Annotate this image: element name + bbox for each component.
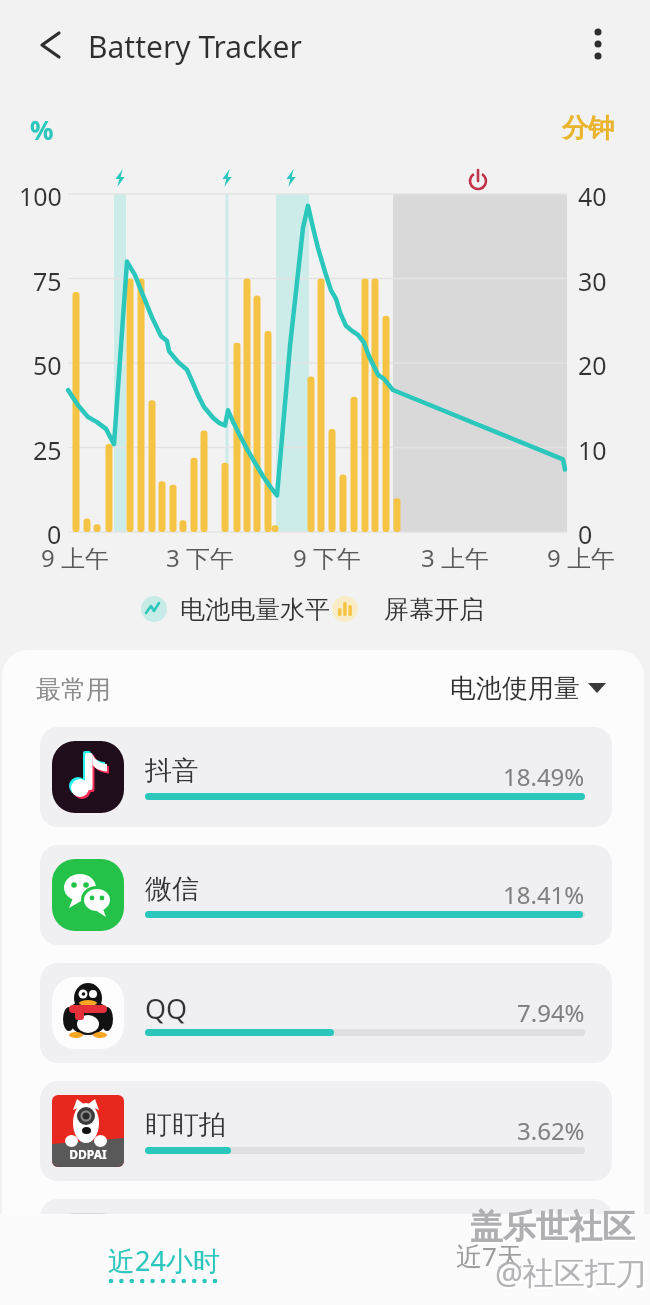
button[interactable] <box>40 1199 612 1299</box>
staticText: 7.94% <box>517 996 585 1029</box>
staticText: 电池电量水平 <box>180 594 330 625</box>
staticText: @社区扛刀 <box>497 1253 649 1295</box>
staticText: 30 <box>578 264 607 298</box>
button[interactable]: QQ <box>40 963 612 1063</box>
staticText: 近24小时 <box>108 1242 220 1279</box>
button[interactable]: 微信 <box>40 845 612 945</box>
staticText: 18.41% <box>503 878 585 911</box>
staticText: DDPAI <box>52 1146 124 1162</box>
staticText: 电池使用量 <box>450 672 580 705</box>
staticText: % <box>30 112 54 147</box>
staticText: Battery Tracker <box>88 26 302 67</box>
staticText: 微信 <box>145 872 199 906</box>
button[interactable]: 近7天 <box>440 1228 550 1278</box>
staticText: 25 <box>33 433 62 467</box>
staticText: 盖乐世社区 <box>472 1208 637 1250</box>
staticText: 3 下午 <box>166 541 234 574</box>
staticText: 100 <box>19 179 62 213</box>
staticText: 抖音 <box>145 754 199 788</box>
staticText: 0 <box>47 517 62 551</box>
staticText: 3 上午 <box>421 541 489 574</box>
staticText: 9 上午 <box>41 541 109 574</box>
staticText: @社区扛刀 <box>495 1251 647 1293</box>
staticText: 9 上午 <box>547 541 615 574</box>
staticText: 盖乐世社区 <box>470 1206 635 1248</box>
staticText: 0 <box>578 517 593 551</box>
staticText: 10 <box>578 433 607 467</box>
staticText: QQ <box>145 990 188 1027</box>
staticText: 75 <box>33 264 62 298</box>
button[interactable]: 抖音 <box>40 727 612 827</box>
staticText: 3.62% <box>517 1114 585 1147</box>
button[interactable]: DDPAI <box>40 1081 612 1181</box>
button[interactable] <box>580 22 620 70</box>
staticText: 50 <box>33 348 62 382</box>
staticText: 40 <box>578 179 607 213</box>
staticText: 分钟 <box>562 112 614 145</box>
staticText: 20 <box>578 348 607 382</box>
staticText: 最常用 <box>36 674 111 705</box>
staticText: 屏幕开启 <box>384 594 484 625</box>
staticText: 9 下午 <box>293 541 361 574</box>
button[interactable]: 近24小时 <box>95 1232 235 1292</box>
staticText: 盯盯拍 <box>145 1108 226 1142</box>
button[interactable]: 电池使用量 <box>332 668 608 708</box>
staticText: 近7天 <box>456 1238 523 1274</box>
staticText: 18.49% <box>503 760 585 793</box>
button[interactable] <box>28 24 72 68</box>
